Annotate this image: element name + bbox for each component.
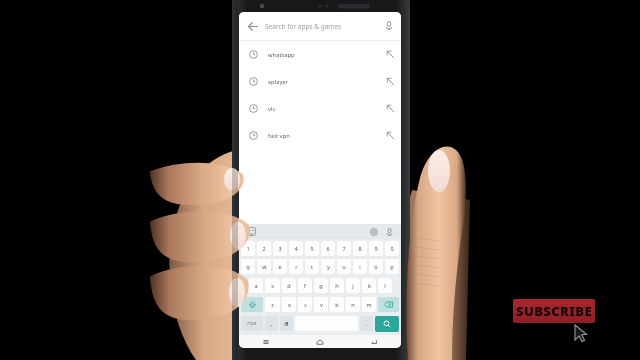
staticText: u: [342, 263, 346, 270]
button[interactable]: Voice search: [377, 12, 401, 40]
staticText: 5: [310, 245, 314, 252]
staticText: whatsapp: [268, 51, 379, 59]
staticText: x: [288, 301, 291, 308]
button[interactable]: i: [353, 259, 367, 274]
button[interactable]: Keyboard settings: [368, 226, 380, 238]
button[interactable]: 6: [321, 241, 335, 256]
button[interactable]: p: [385, 259, 399, 274]
staticText: p: [390, 263, 394, 270]
staticText: j: [352, 282, 354, 289]
staticText: g: [319, 282, 323, 289]
button[interactable]: vlc: [239, 95, 401, 122]
button[interactable]: अ: [280, 316, 293, 331]
button[interactable]: 4: [289, 241, 303, 256]
button[interactable]: Emoji: [246, 226, 257, 237]
button[interactable]: y: [321, 259, 335, 274]
button[interactable]: 0: [385, 241, 399, 256]
button[interactable]: n: [346, 297, 360, 312]
staticText: i: [359, 263, 361, 270]
button[interactable]: t: [305, 259, 319, 274]
button[interactable]: Search: [375, 316, 399, 332]
staticText: ,: [271, 320, 273, 327]
button[interactable]: ?123: [241, 316, 263, 331]
staticText: y: [327, 263, 330, 270]
button[interactable]: Home: [293, 335, 347, 348]
button[interactable]: l: [378, 278, 392, 293]
button[interactable]: v: [314, 297, 328, 312]
staticText: 1: [246, 245, 250, 252]
staticText: vlc: [268, 105, 379, 113]
staticText: f: [304, 282, 306, 289]
staticText: v: [320, 301, 323, 308]
staticText: ?123: [247, 321, 257, 327]
staticText: h: [335, 282, 339, 289]
button[interactable]: xplayer: [239, 68, 401, 95]
staticText: s: [271, 282, 274, 289]
button[interactable]: Insert xplayer: [379, 68, 401, 95]
staticText: m: [366, 301, 372, 308]
staticText: b: [335, 301, 339, 308]
button[interactable]: 9: [369, 241, 383, 256]
staticText: 4: [294, 245, 298, 252]
staticText: d: [287, 282, 291, 289]
staticText: Search for apps & games: [265, 22, 377, 31]
staticText: n: [351, 301, 355, 308]
button[interactable]: fast vpn: [239, 122, 401, 149]
button[interactable]: e: [273, 259, 287, 274]
button[interactable]: o: [369, 259, 383, 274]
button[interactable]: 5: [305, 241, 319, 256]
staticText: .: [366, 320, 368, 327]
staticText: a: [254, 282, 258, 289]
staticText: xplayer: [268, 78, 379, 86]
staticText: 8: [358, 245, 362, 252]
button[interactable]: Back: [239, 12, 265, 40]
button[interactable]: SUBSCRIBE: [513, 299, 595, 323]
staticText: r: [295, 263, 298, 270]
button[interactable]: w: [257, 259, 271, 274]
button[interactable]: .: [360, 316, 373, 331]
button[interactable]: h: [330, 278, 344, 293]
button[interactable]: whatsapp: [239, 41, 401, 68]
button[interactable]: f: [298, 278, 312, 293]
staticText: e: [278, 263, 282, 270]
button[interactable]: d: [282, 278, 296, 293]
button[interactable]: Recents: [239, 335, 293, 348]
button[interactable]: 8: [353, 241, 367, 256]
button[interactable]: 2: [257, 241, 271, 256]
button[interactable]: a: [248, 278, 263, 293]
button[interactable]: Insert whatsapp: [379, 41, 401, 68]
button[interactable]: Backspace: [378, 297, 399, 312]
button[interactable]: m: [362, 297, 376, 312]
button[interactable]: ,: [265, 316, 278, 331]
button[interactable]: x: [282, 297, 296, 312]
button[interactable]: 7: [337, 241, 351, 256]
staticText: k: [368, 282, 371, 289]
button[interactable]: s: [265, 278, 280, 293]
button[interactable]: r: [289, 259, 303, 274]
button[interactable]: j: [346, 278, 360, 293]
button[interactable]: 1: [241, 241, 255, 256]
staticText: l: [384, 282, 386, 289]
staticText: o: [374, 263, 378, 270]
button[interactable]: z: [265, 297, 280, 312]
staticText: q: [246, 263, 250, 270]
staticText: 0: [390, 245, 394, 252]
button[interactable]: Shift: [241, 297, 263, 312]
button[interactable]: Insert vlc: [379, 95, 401, 122]
button[interactable]: k: [362, 278, 376, 293]
button[interactable]: Back: [347, 335, 401, 348]
staticText: c: [304, 301, 307, 308]
staticText: अ: [284, 320, 289, 327]
staticText: fast vpn: [268, 132, 379, 140]
button[interactable]: 3: [273, 241, 287, 256]
button[interactable]: u: [337, 259, 351, 274]
staticText: 7: [342, 245, 346, 252]
staticText: z: [271, 301, 274, 308]
button[interactable]: Voice input: [383, 226, 395, 238]
button[interactable]: g: [314, 278, 328, 293]
button[interactable]: q: [241, 259, 255, 274]
button[interactable]: b: [330, 297, 344, 312]
button[interactable]: c: [298, 297, 312, 312]
button[interactable]: Insert fast vpn: [379, 122, 401, 149]
